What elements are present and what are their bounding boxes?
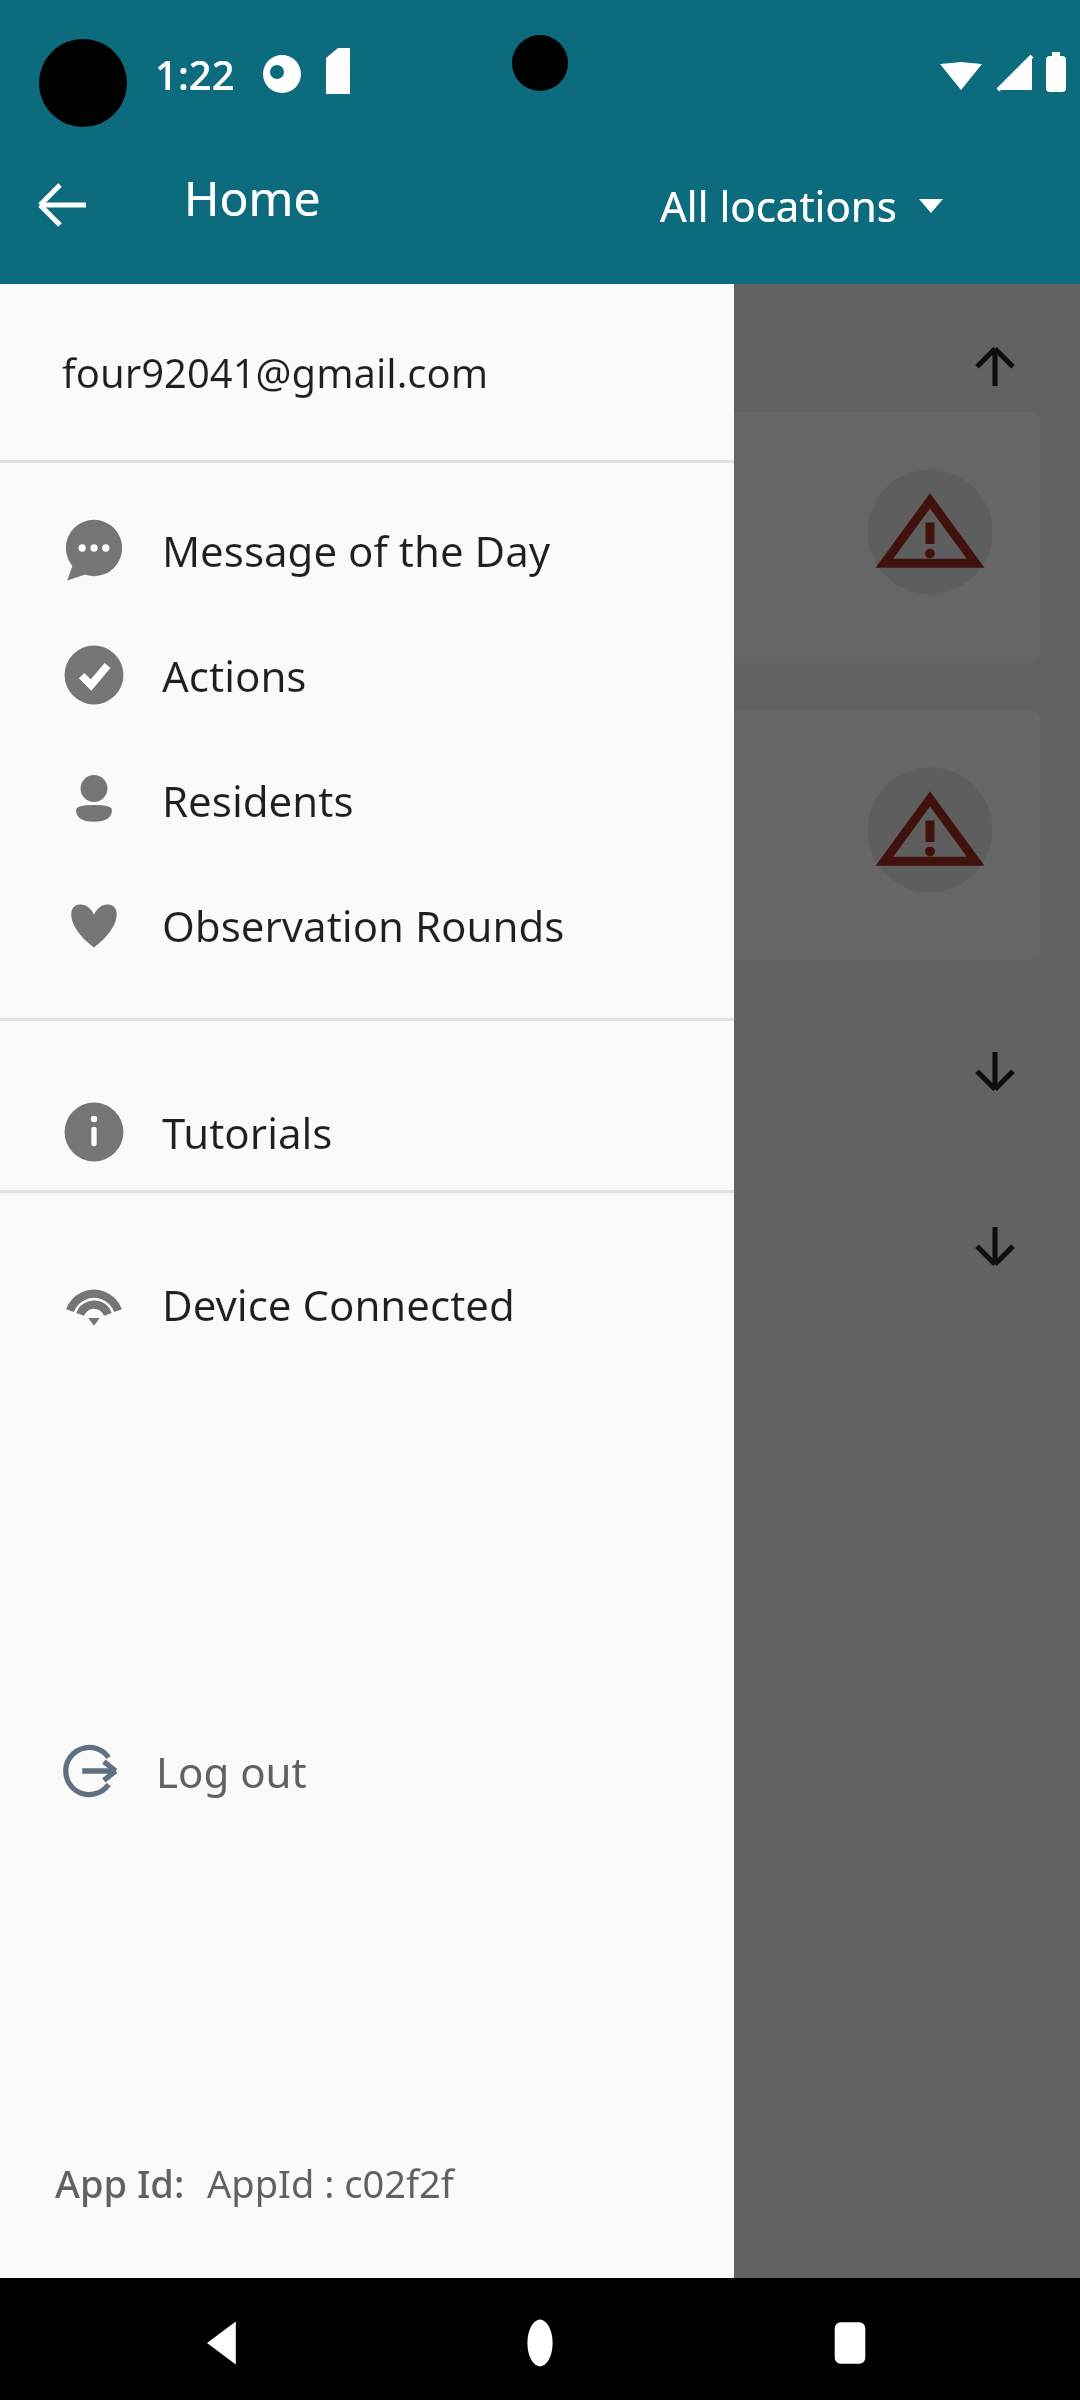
button[interactable]: Residents	[0, 742, 734, 858]
staticText: Tutorials	[162, 1104, 333, 1161]
button[interactable]: Message of the Day	[0, 492, 734, 608]
button[interactable]: Home	[495, 2298, 585, 2388]
staticText: four92041@gmail.com	[62, 345, 489, 399]
button[interactable]: Tutorials	[0, 1074, 734, 1190]
staticText: App Id:	[55, 2157, 185, 2209]
staticText: All locations	[660, 177, 897, 234]
button[interactable]: Back	[24, 165, 104, 245]
staticText: Residents	[162, 772, 354, 829]
staticText: Device Connected	[162, 1276, 515, 1333]
staticText: Log out	[156, 1743, 307, 1800]
staticText: AppId : c02f2f	[207, 2157, 454, 2209]
button[interactable]: Actions	[0, 617, 734, 733]
button[interactable]: Log out	[0, 1716, 734, 1826]
staticText: Observation Rounds	[162, 897, 565, 954]
staticText: Home	[184, 165, 321, 230]
staticText: Actions	[162, 647, 307, 704]
button[interactable]: Device Connected	[0, 1246, 734, 1362]
button[interactable]: All locations	[660, 167, 949, 243]
button[interactable]: Observation Rounds	[0, 867, 734, 983]
staticText: Message of the Day	[162, 522, 551, 579]
button[interactable]: Back	[180, 2298, 270, 2388]
button[interactable]: four92041@gmail.com	[0, 284, 734, 460]
staticText: 1:22	[155, 47, 235, 101]
button[interactable]: Recent apps	[805, 2298, 895, 2388]
